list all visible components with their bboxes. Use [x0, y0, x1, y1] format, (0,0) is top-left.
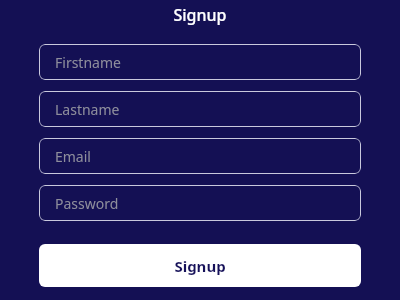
button[interactable]: Firstname [39, 44, 361, 80]
button[interactable]: Password [39, 185, 361, 221]
button[interactable]: Lastname [39, 91, 361, 127]
button[interactable]: Email [39, 138, 361, 174]
staticText: Firstname [55, 53, 121, 72]
staticText: Signup [174, 256, 226, 276]
button[interactable]: Signup [39, 244, 361, 287]
staticText: Email [55, 147, 91, 166]
staticText: Lastname [55, 100, 120, 119]
staticText: Signup [173, 4, 227, 26]
staticText: Password [55, 194, 119, 213]
